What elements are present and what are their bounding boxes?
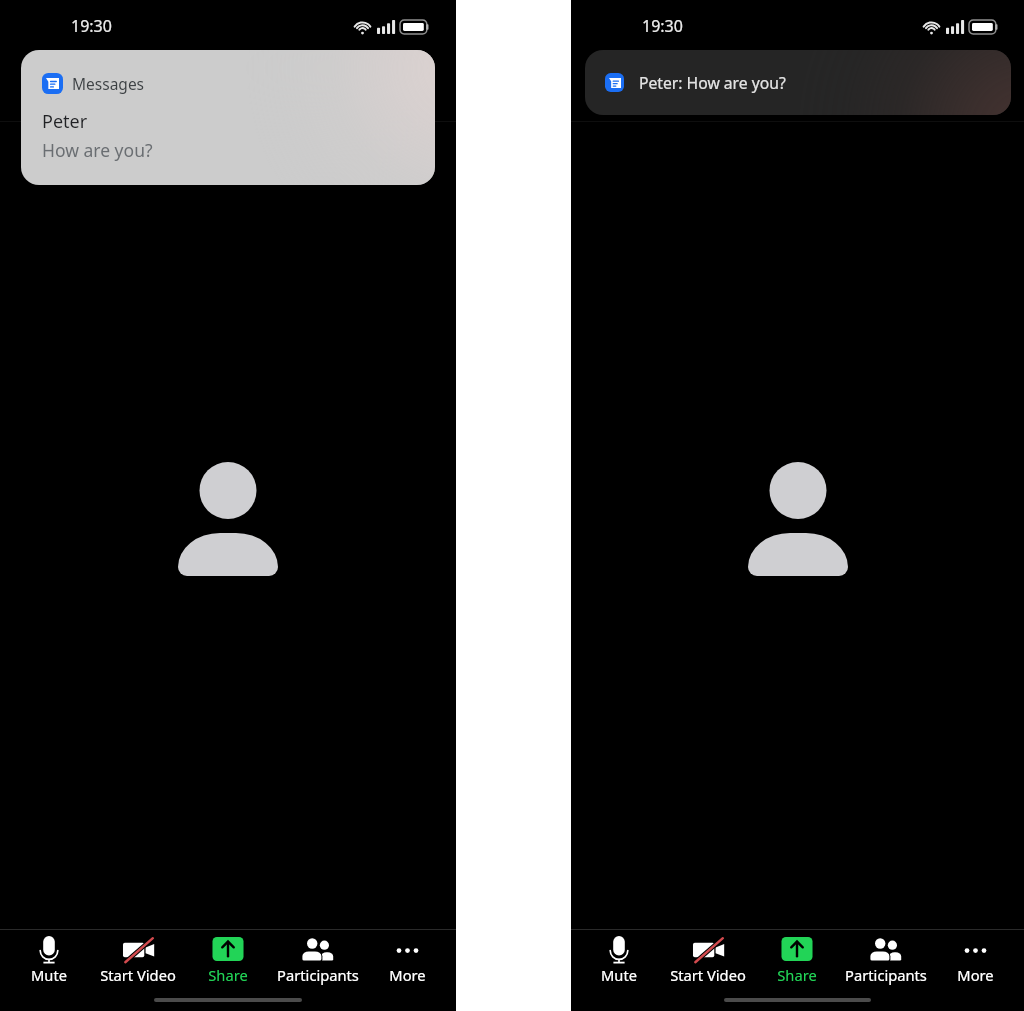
staticText: More xyxy=(389,965,426,985)
button[interactable]: Participants xyxy=(263,930,373,990)
staticText: Mute xyxy=(601,965,637,985)
staticText: How are you? xyxy=(42,138,153,162)
staticText: Participants xyxy=(845,965,927,985)
staticText: Start Video xyxy=(670,965,746,985)
button[interactable]: Mute xyxy=(0,930,104,990)
button[interactable]: Peter: How are you? xyxy=(585,50,1011,115)
staticText: Mute xyxy=(31,965,67,985)
button[interactable]: Messages xyxy=(21,50,435,185)
staticText: Share xyxy=(208,965,248,985)
button[interactable]: Mute xyxy=(564,930,674,990)
staticText: 19:30 xyxy=(642,15,683,37)
staticText: More xyxy=(957,965,994,985)
button[interactable]: Share xyxy=(742,930,852,990)
button[interactable]: Start Video xyxy=(653,930,763,990)
staticText: Messages xyxy=(72,73,145,94)
button[interactable]: Start Video xyxy=(83,930,193,990)
staticText: Share xyxy=(777,965,817,985)
staticText: Peter: How are you? xyxy=(639,72,786,93)
button[interactable]: More xyxy=(920,930,1024,990)
button[interactable]: More xyxy=(352,930,462,990)
staticText: Start Video xyxy=(100,965,176,985)
staticText: Participants xyxy=(277,965,359,985)
staticText: Peter xyxy=(42,109,88,134)
button[interactable]: Share xyxy=(173,930,283,990)
button[interactable]: Participants xyxy=(831,930,941,990)
staticText: 19:30 xyxy=(71,15,112,37)
